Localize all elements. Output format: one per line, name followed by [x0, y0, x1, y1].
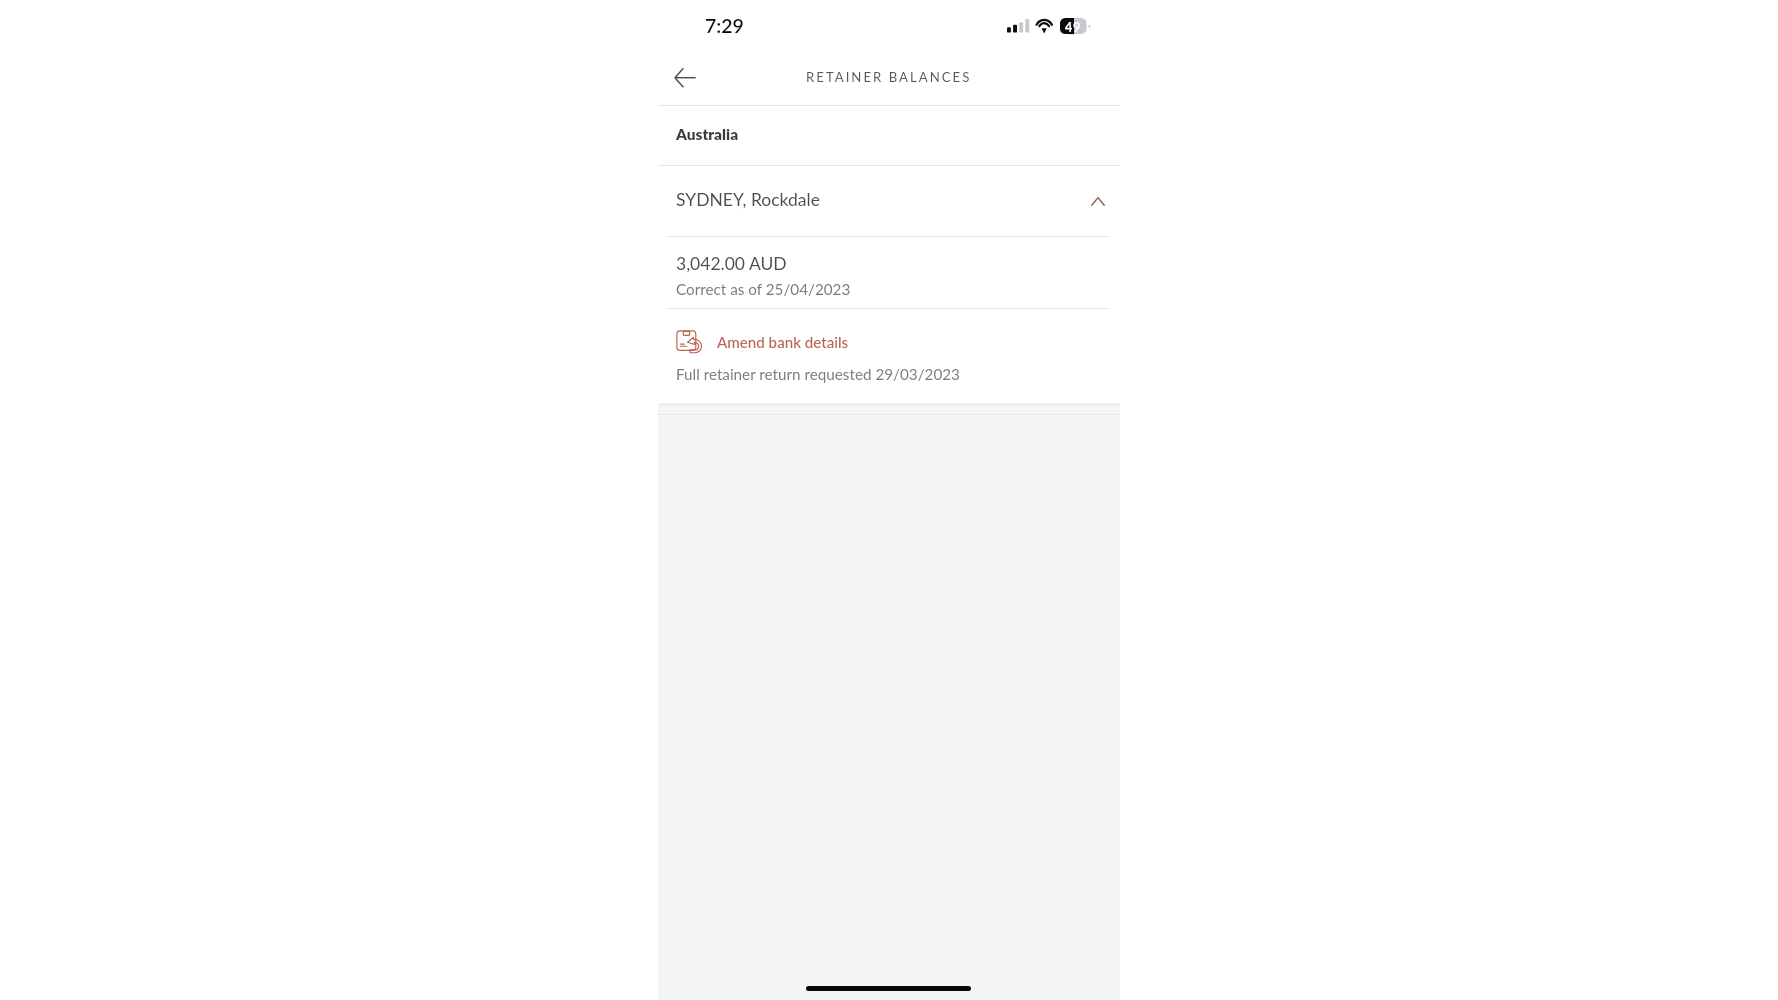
staticText: Correct as of 25/04/2023 — [676, 280, 851, 298]
button[interactable]: SYDNEY, Rockdale — [658, 165, 1120, 235]
staticText: 3,042.00 AUD — [676, 253, 787, 274]
staticText: 9 — [1073, 20, 1081, 35]
staticText: RETAINER BALANCES — [806, 69, 972, 85]
staticText: 4 — [1065, 20, 1073, 35]
staticText: SYDNEY, Rockdale — [676, 189, 820, 210]
button[interactable]: Back — [664, 60, 706, 96]
staticText: Australia — [676, 125, 739, 143]
button[interactable]: Amend bank details — [676, 329, 849, 355]
staticText: Full retainer return requested 29/03/202… — [676, 365, 960, 383]
staticText: 7:29 — [705, 14, 744, 37]
staticText: Amend bank details — [717, 333, 849, 351]
